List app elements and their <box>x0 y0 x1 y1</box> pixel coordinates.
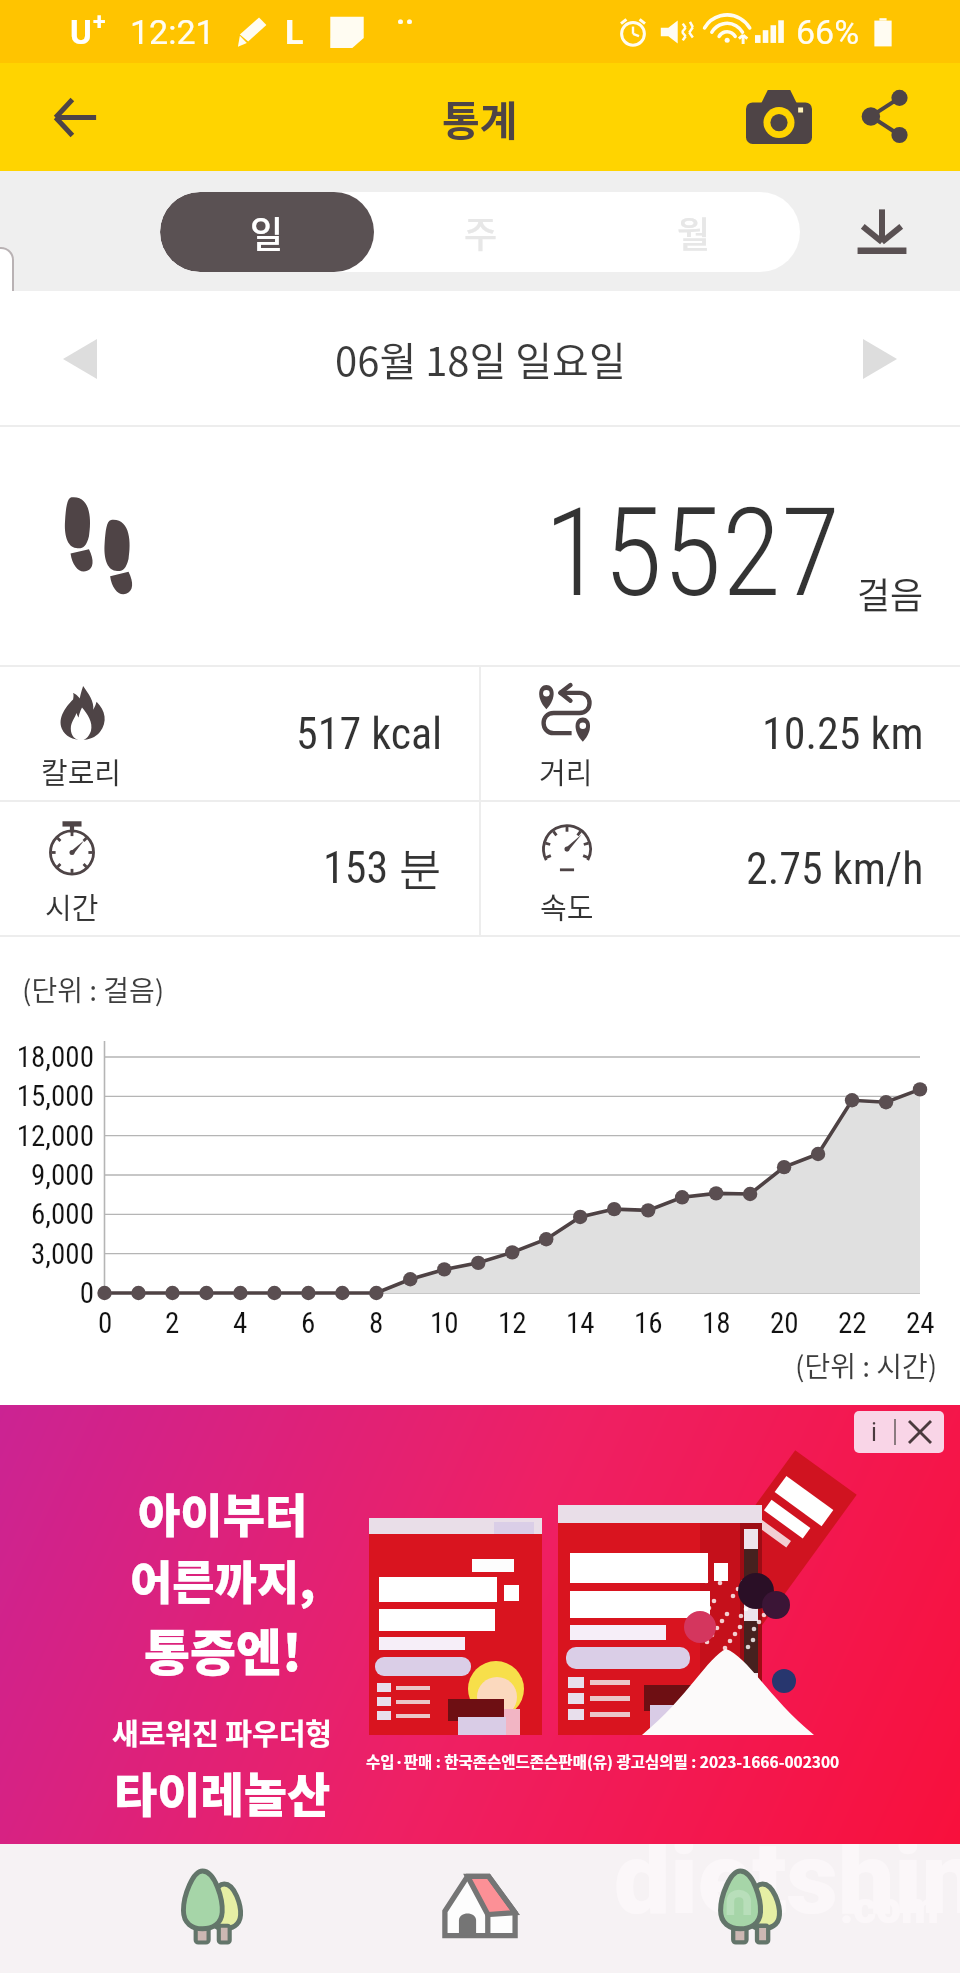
staticText: 어른까지, <box>130 1546 316 1613</box>
button[interactable]: 일 <box>160 192 374 272</box>
button[interactable]: Previous day <box>0 291 160 427</box>
staticText: i <box>871 1417 877 1447</box>
button[interactable]: Ranking <box>682 1844 818 1973</box>
button[interactable]: 아이부터 <box>0 1405 960 1844</box>
staticText: 66% <box>796 12 860 52</box>
staticText: 12 <box>498 1306 527 1340</box>
button[interactable]: 월 <box>587 192 800 272</box>
button[interactable]: Back <box>25 63 125 171</box>
staticText: 2.75 km/h <box>746 843 924 895</box>
button[interactable]: Next day <box>800 291 960 427</box>
staticText: 10.25 km <box>762 708 924 760</box>
staticText: 10 <box>430 1306 459 1340</box>
staticText: + <box>93 9 106 36</box>
staticText: 18 <box>702 1306 731 1340</box>
staticText: dietshin <box>614 1844 960 1937</box>
staticText: ·· <box>396 4 415 39</box>
staticText: 24 <box>906 1306 935 1340</box>
staticText: 타이레놀산 <box>114 1757 331 1825</box>
staticText: 4 <box>233 1306 248 1340</box>
button[interactable]: Close ad <box>896 1411 944 1453</box>
staticText: 아이부터 <box>138 1479 308 1546</box>
staticText: 통계 <box>442 88 518 147</box>
staticText: 8 <box>369 1306 384 1340</box>
staticText: 22 <box>838 1306 867 1340</box>
staticText: 통증엔! <box>144 1613 302 1685</box>
button[interactable]: Community <box>144 1844 280 1973</box>
staticText: 9,000 <box>31 1158 94 1192</box>
staticText: 월 <box>677 206 711 258</box>
staticText: 18,000 <box>16 1040 94 1074</box>
button[interactable]: 속도 <box>481 802 960 935</box>
button[interactable]: 거리 <box>481 667 960 800</box>
staticText: 153 분 <box>323 841 443 896</box>
staticText: 걸음 <box>857 567 924 619</box>
staticText: 6 <box>301 1306 316 1340</box>
staticText: 14 <box>566 1306 595 1340</box>
staticText: 15,000 <box>16 1079 94 1113</box>
staticText: 20 <box>770 1306 799 1340</box>
staticText: 06월 18일 일요일 <box>335 330 626 388</box>
button[interactable]: 칼로리 <box>0 667 479 800</box>
staticText: 시간 <box>45 885 99 927</box>
staticText: 16 <box>634 1306 663 1340</box>
button[interactable]: 주 <box>374 192 587 272</box>
staticText: 0 <box>98 1306 113 1340</box>
staticText: 주 <box>464 206 498 258</box>
staticText: 517 kcal <box>296 708 443 760</box>
button[interactable]: Home <box>412 1844 548 1973</box>
staticText: 12,000 <box>16 1119 94 1153</box>
staticText: (단위 : 걸음) <box>22 969 165 1010</box>
staticText: 12:21 <box>130 12 215 52</box>
staticText: (단위 : 시간) <box>795 1345 938 1386</box>
staticText: 일 <box>250 206 284 258</box>
staticText: 15527 <box>544 482 841 625</box>
staticText: 6,000 <box>31 1197 94 1231</box>
button[interactable]: Camera <box>729 63 829 171</box>
staticText: 수입·판매 : 한국존슨엔드존슨판매(유) 광고심의필 : 2023-1666-… <box>366 1750 840 1772</box>
staticText: 속도 <box>540 885 594 927</box>
button[interactable]: Ad info <box>854 1411 894 1453</box>
staticText: U <box>70 13 92 52</box>
staticText: 새로워진 파우더형 <box>112 1711 333 1753</box>
staticText: 거리 <box>539 750 593 792</box>
staticText: 0 <box>79 1276 94 1310</box>
button[interactable]: 시간 <box>0 802 479 935</box>
button[interactable]: Share <box>836 63 936 171</box>
staticText: L <box>285 12 304 52</box>
button[interactable]: Download <box>822 171 942 291</box>
staticText: 칼로리 <box>41 750 122 792</box>
staticText: 3,000 <box>31 1237 94 1271</box>
staticText: 2 <box>165 1306 180 1340</box>
